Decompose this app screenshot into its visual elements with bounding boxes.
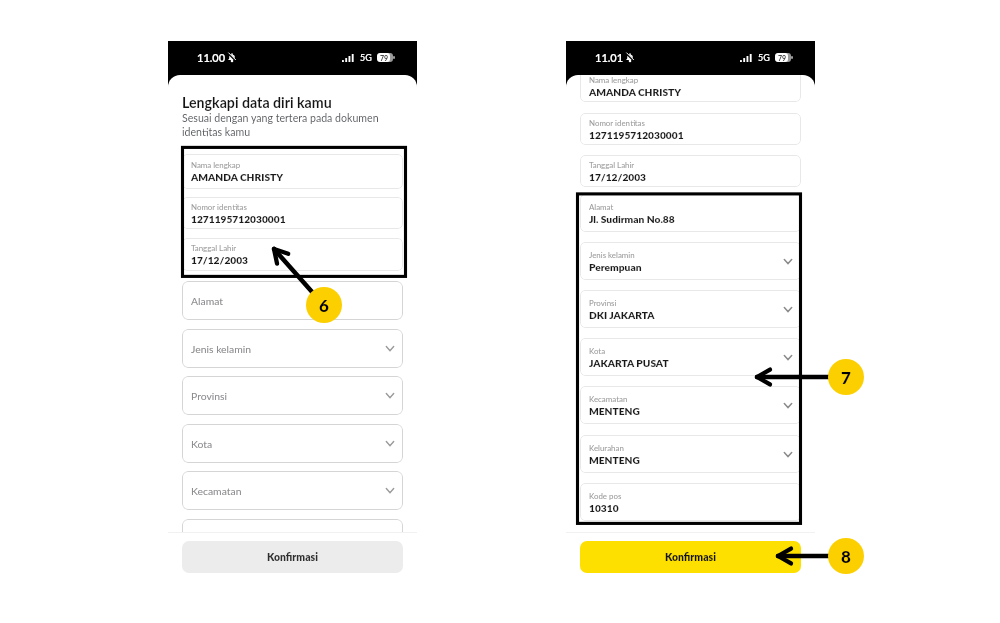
staticText: 10310 [589,502,619,514]
staticText: Jl. Sudirman No.88 [589,213,675,225]
staticText: Nomor identitas [589,118,645,127]
staticText: 5G [360,52,372,63]
staticText: 6 [319,295,329,315]
button[interactable]: Alamat [580,194,801,232]
staticText: 17/12/2003 [191,254,249,266]
button[interactable]: Kode pos [580,483,801,521]
staticText: 79 [778,54,787,62]
staticText: 5G [758,52,770,63]
staticText: JAKARTA PUSAT [589,357,669,369]
staticText: Kelurahan [589,443,624,452]
button[interactable]: Alamat [182,281,403,320]
button[interactable]: Nama lengkap [182,154,403,189]
button[interactable]: Tanggal Lahir [580,155,801,187]
staticText: 1271195712030001 [589,129,684,141]
staticText: Alamat [191,295,223,307]
staticText: Nama lengkap [191,160,241,169]
staticText: Tanggal Lahir [191,243,237,252]
button[interactable]: Kelurahan [182,519,403,558]
staticText: Provinsi [191,390,228,402]
button[interactable]: 7 [828,359,864,395]
button[interactable]: Konfirmasi [580,541,801,573]
button[interactable]: Nomor identitas [182,197,403,229]
button[interactable]: Nomor identitas [580,113,801,145]
button[interactable]: 6 [306,287,342,323]
button[interactable]: Jenis kelamin [182,329,403,368]
staticText: 17/12/2003 [589,171,647,183]
button[interactable]: Kelurahan [580,435,801,473]
button[interactable]: Kota [182,424,403,463]
button[interactable]: Nama lengkap [580,70,801,102]
staticText: AMANDA CHRISTY [191,171,284,183]
staticText: Perempuan [589,261,642,273]
staticText: 7 [841,367,851,387]
button[interactable]: Kota [580,338,801,376]
button[interactable]: Provinsi [182,376,403,415]
staticText: MENTENG [589,454,640,466]
staticText: Nomor identitas [191,202,247,211]
staticText: Kelurahan [191,533,237,545]
staticText: 8 [841,546,851,566]
button[interactable]: Konfirmasi [182,541,403,573]
staticText: Kode pos [589,491,622,500]
staticText: Tanggal Lahir [589,160,635,169]
button[interactable]: Jenis kelamin [580,242,801,280]
staticText: Lengkapi data diri kamu [182,94,332,111]
staticText: 11.01 [595,51,624,64]
staticText: Nama lengkap [589,75,639,84]
button[interactable]: 8 [828,538,864,574]
staticText: MENTENG [589,405,640,417]
button[interactable]: Kecamatan [580,386,801,424]
staticText: DKI JAKARTA [589,309,655,321]
staticText: Provinsi [589,298,617,307]
button[interactable]: Kecamatan [182,471,403,510]
staticText: 11.00 [197,51,226,64]
staticText: Kecamatan [191,485,242,497]
staticText: Kota [589,346,606,355]
button[interactable]: Provinsi [580,290,801,328]
staticText: Kota [191,438,213,450]
staticText: Jenis kelamin [191,343,252,355]
staticText: Konfirmasi [267,551,318,563]
staticText: 79 [380,54,389,62]
staticText: 1271195712030001 [191,213,286,225]
staticText: Kecamatan [589,394,628,403]
staticText: AMANDA CHRISTY [589,86,682,98]
button[interactable]: Tanggal Lahir [182,238,403,271]
staticText: Alamat [589,202,614,211]
staticText: Jenis kelamin [589,250,635,259]
staticText: Konfirmasi [665,551,716,563]
staticText: Sesuai dengan yang tertera pada dokumen … [182,112,407,138]
